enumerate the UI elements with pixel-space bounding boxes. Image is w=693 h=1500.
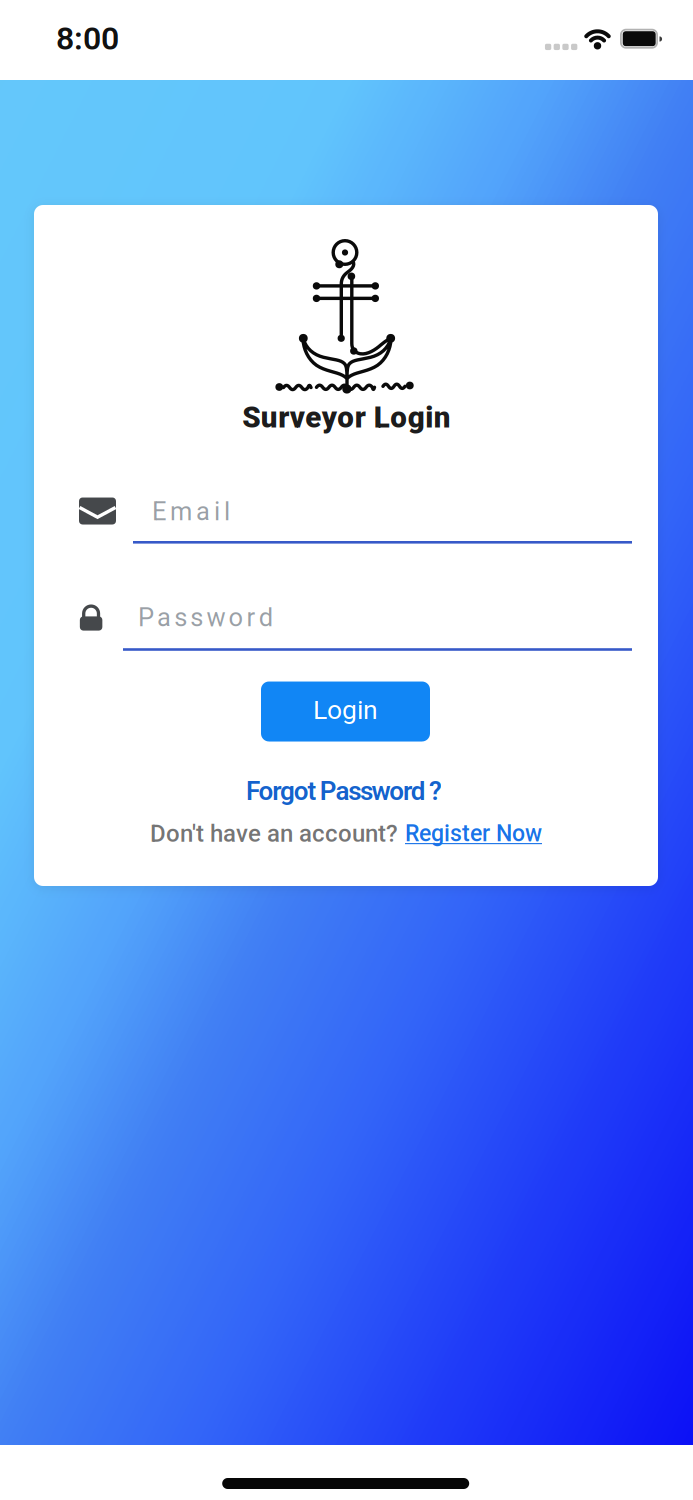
staticText: o <box>228 603 243 632</box>
staticText: w <box>206 603 225 632</box>
staticText: s <box>190 603 203 632</box>
staticText: Don't have an account? <box>150 819 398 847</box>
staticText: d <box>259 603 273 632</box>
staticText: a <box>157 603 171 632</box>
staticText: Register Now <box>405 820 542 847</box>
staticText: s <box>174 603 187 632</box>
staticText: E <box>152 497 166 526</box>
staticText: i <box>214 497 220 526</box>
staticText: m <box>170 497 192 526</box>
staticText: a <box>196 497 210 526</box>
staticText: P <box>138 603 154 632</box>
staticText: 8:00 <box>56 20 119 57</box>
staticText: Forgot Password ? <box>246 776 442 806</box>
button[interactable]: Login <box>261 681 430 741</box>
button[interactable]: Forgot Password ? <box>246 776 442 806</box>
staticText: l <box>224 497 230 526</box>
button[interactable]: Register Now <box>405 820 542 847</box>
staticText: Surveyor Login <box>242 400 451 435</box>
staticText: Login <box>313 694 378 726</box>
staticText: r <box>247 603 256 632</box>
